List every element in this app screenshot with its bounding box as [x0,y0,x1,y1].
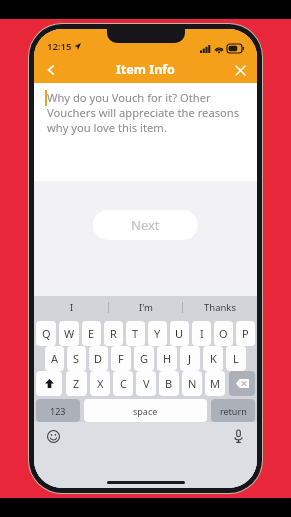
staticText: Item Info [116,61,175,78]
staticText: O [219,326,228,341]
staticText: C [120,376,127,391]
button[interactable]: Shift [36,371,62,396]
staticText: Why do you Vouch for it? Other Vouchers … [47,90,247,135]
button[interactable]: space [84,399,207,422]
button[interactable]: I [192,321,211,346]
staticText: V [143,376,150,391]
button[interactable]: K [203,346,223,371]
button[interactable]: Y [148,321,167,346]
button[interactable]: M [205,371,225,396]
staticText: 123 [50,405,66,417]
staticText: return [220,405,247,417]
button[interactable]: Z [66,371,87,396]
button[interactable]: X [90,371,110,396]
staticText: H [163,351,172,366]
staticText: Thanks [204,301,236,314]
staticText: Next [131,216,160,234]
button[interactable]: Q [36,321,56,346]
staticText: S [73,351,80,366]
staticText: N [188,376,197,391]
staticText: E [88,326,95,341]
button[interactable]: I [34,296,109,319]
button[interactable]: P [236,321,255,346]
button[interactable]: W [59,321,79,346]
button[interactable]: Close [229,59,251,81]
staticText: space [133,405,158,417]
button[interactable]: V [136,371,156,396]
staticText: J [188,351,192,366]
button[interactable]: F [111,346,131,371]
staticText: T [132,326,139,341]
staticText: I'm [139,301,153,314]
button[interactable]: D [89,346,108,371]
staticText: L [233,351,239,366]
button[interactable]: G [134,346,154,371]
button[interactable]: A [45,346,64,371]
staticText: W [64,326,75,341]
button[interactable]: R [104,321,123,346]
button[interactable]: O [214,321,233,346]
button[interactable]: T [126,321,145,346]
staticText: B [165,376,173,391]
button[interactable]: U [170,321,189,346]
button[interactable]: J [180,346,200,371]
staticText: U [175,326,184,341]
staticText: Q [42,326,51,341]
button[interactable]: Why do you Vouch for it? Other Vouchers … [45,90,247,181]
button[interactable]: Emoji [43,426,63,446]
button[interactable]: B [159,371,179,396]
button[interactable]: Thanks [183,296,257,319]
button[interactable]: N [182,371,202,396]
staticText: Z [73,376,80,391]
staticText: X [97,376,104,391]
button[interactable]: L [226,346,246,371]
button[interactable]: Next [93,210,198,240]
staticText: I [200,326,204,341]
button[interactable]: 123 [36,399,80,422]
button[interactable]: H [157,346,177,371]
staticText: A [51,351,59,366]
staticText: K [210,351,217,366]
button[interactable]: return [211,399,255,422]
staticText: 12:15 [47,40,72,53]
staticText: R [110,326,117,341]
button[interactable]: Voice input [228,426,248,446]
staticText: I [70,301,74,314]
staticText: P [242,326,249,341]
staticText: F [118,351,124,366]
staticText: D [94,351,103,366]
button[interactable]: S [67,346,86,371]
staticText: M [210,376,220,391]
staticText: Y [154,326,161,341]
button[interactable]: Backspace [229,371,255,396]
button[interactable]: C [113,371,133,396]
staticText: G [140,351,149,366]
button[interactable]: I'm [109,296,183,319]
button[interactable]: Back [40,59,62,81]
button[interactable]: E [82,321,101,346]
